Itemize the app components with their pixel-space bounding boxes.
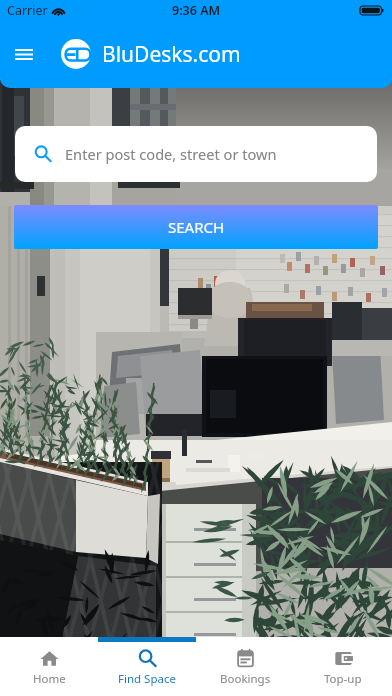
button[interactable]: Top-up	[294, 637, 392, 696]
button[interactable]: Home	[0, 637, 98, 696]
staticText: SEARCH	[168, 217, 225, 237]
staticText: Carrier	[7, 2, 48, 19]
staticText: Home	[33, 671, 66, 687]
staticText: Enter post code, street or town	[65, 144, 277, 164]
staticText: Top-up	[324, 671, 362, 687]
button[interactable]: Find Space	[98, 637, 196, 696]
button[interactable]: Menu	[3, 33, 45, 75]
staticText: BluDesks.com	[102, 40, 241, 69]
button[interactable]: Enter post code, street or town	[15, 126, 377, 182]
button[interactable]: Bookings	[196, 637, 294, 696]
staticText: Find Space	[118, 671, 176, 687]
button[interactable]: SEARCH	[14, 205, 378, 249]
staticText: Bookings	[220, 671, 271, 687]
staticText: 9:36 AM	[172, 2, 221, 19]
